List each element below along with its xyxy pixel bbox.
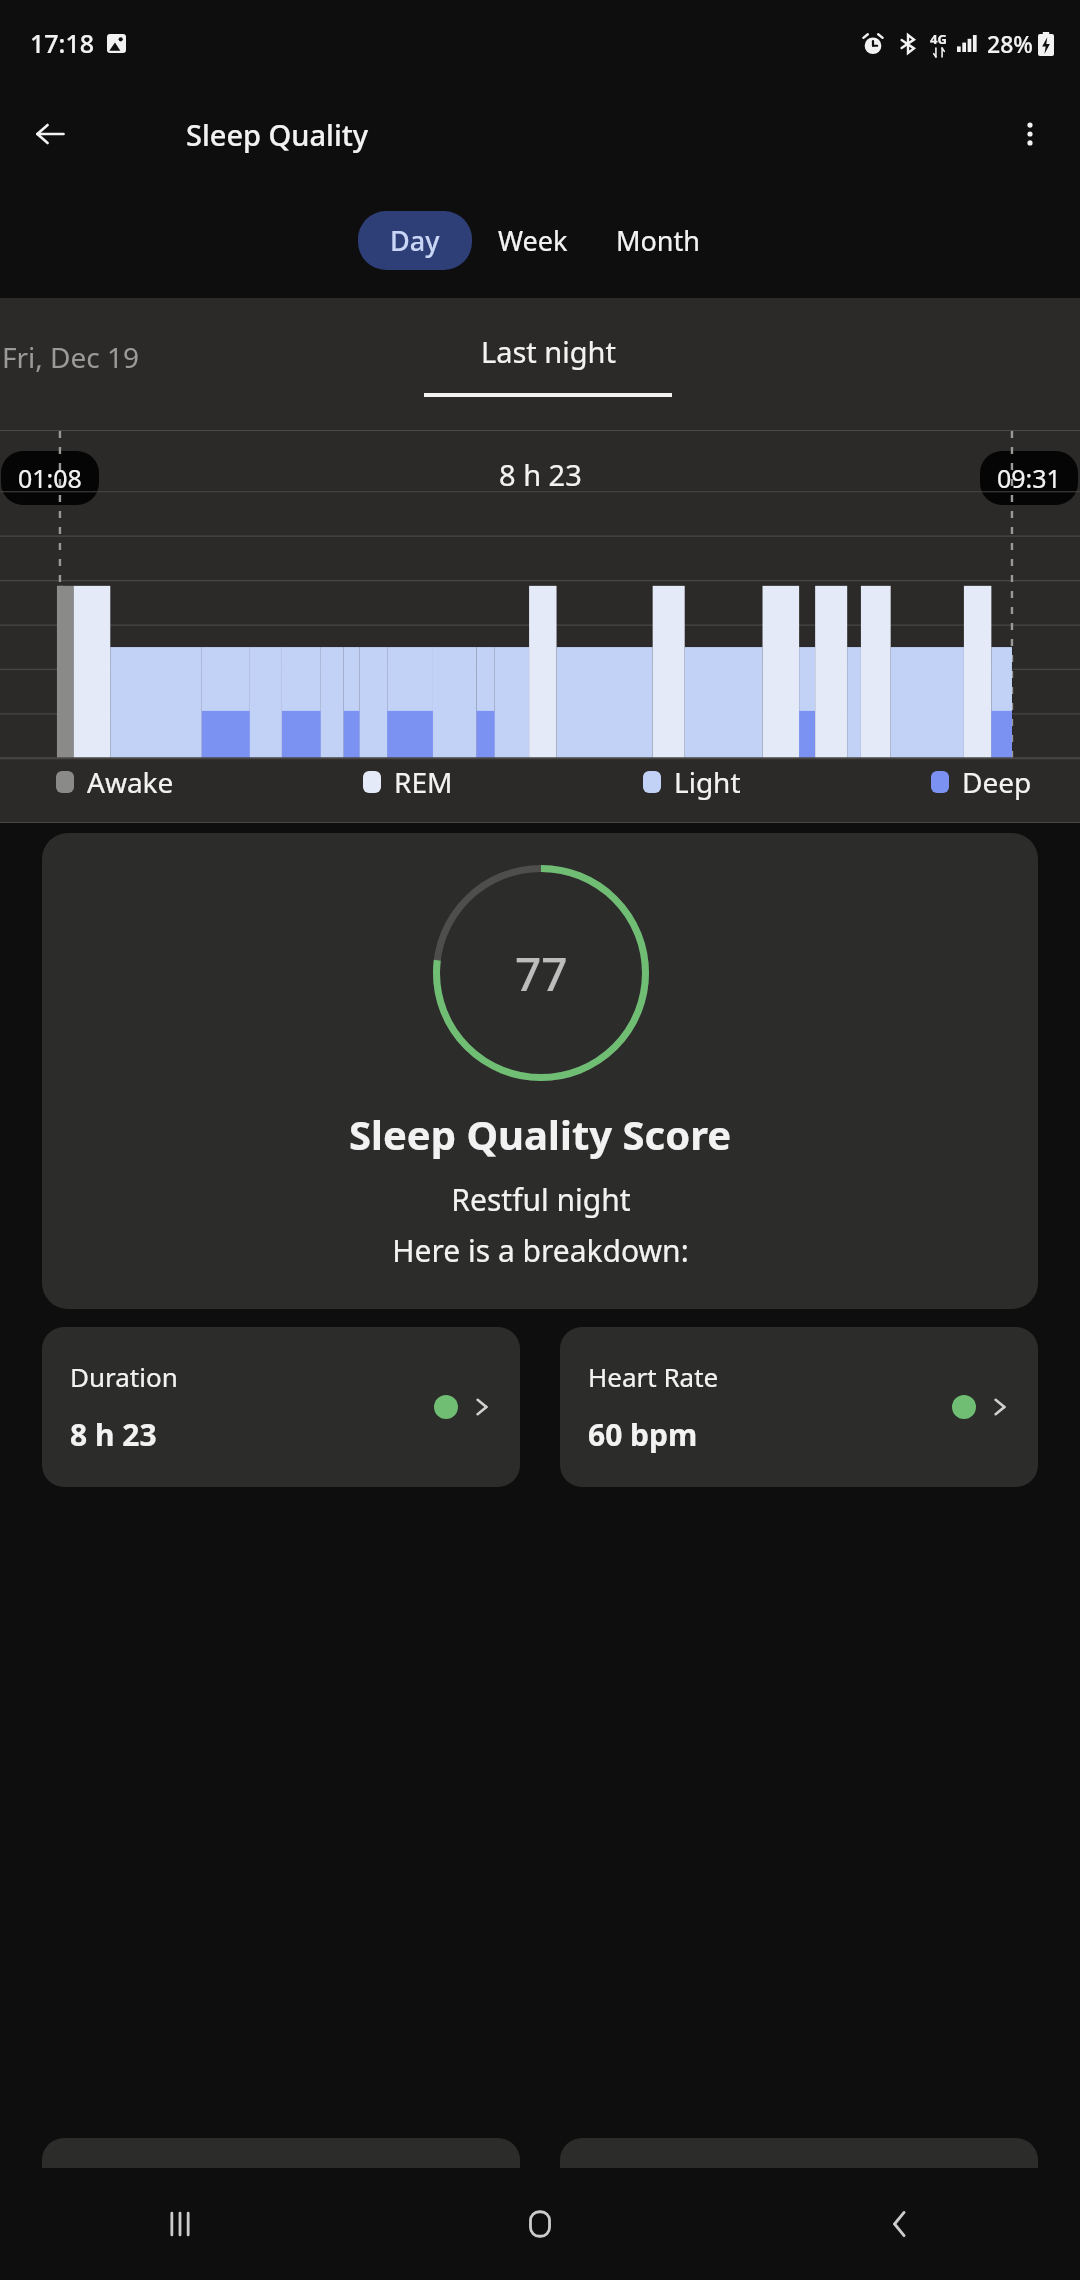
staticText: Duration	[70, 1359, 178, 1394]
staticText: REM	[394, 763, 453, 801]
button[interactable]: Heart Rate	[560, 1327, 1038, 1487]
button[interactable]: More options	[1002, 106, 1058, 162]
staticText: Light	[674, 763, 741, 801]
button[interactable]: Duration	[42, 1327, 520, 1487]
staticText: 09:31	[997, 461, 1061, 495]
staticText: Heart Rate	[588, 1359, 719, 1394]
staticText: 8 h 23	[499, 455, 582, 494]
staticText: Day	[390, 222, 440, 259]
button[interactable]: Back	[22, 106, 78, 162]
staticText: 01:08	[18, 461, 82, 495]
button[interactable]: Home	[360, 2168, 720, 2280]
button[interactable]: Week	[472, 211, 594, 270]
staticText: Month	[616, 222, 700, 259]
button[interactable]: Back	[720, 2168, 1080, 2280]
staticText: Week	[498, 222, 568, 259]
staticText: Last night	[481, 332, 616, 371]
staticText: 17:18	[30, 26, 95, 60]
staticText: 28%	[987, 28, 1033, 59]
staticText: 4G	[930, 30, 947, 48]
staticText: Fri, Dec 19	[2, 338, 140, 376]
staticText: Restful night	[451, 1179, 631, 1220]
button[interactable]: Day	[358, 211, 472, 270]
staticText: 8 h 23	[70, 1414, 157, 1455]
button[interactable]: Recent apps	[0, 2168, 360, 2280]
staticText: Sleep Quality Score	[349, 1107, 732, 1161]
staticText: Sleep Quality	[186, 115, 369, 154]
button[interactable]: 77	[42, 833, 1038, 1309]
staticText: Here is a breakdown:	[392, 1230, 689, 1271]
staticText: Awake	[87, 763, 174, 801]
button[interactable]: Last night	[481, 332, 616, 371]
staticText: 60 bpm	[588, 1414, 698, 1455]
staticText: 77	[515, 942, 568, 1005]
staticText: Deep	[962, 763, 1032, 801]
button[interactable]: Month	[594, 211, 722, 270]
